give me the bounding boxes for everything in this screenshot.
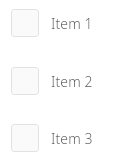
- button[interactable]: Toggle Item 2: [11, 67, 39, 95]
- staticText: Item 3: [51, 129, 93, 148]
- button[interactable]: Toggle Item 1: [11, 9, 39, 37]
- button[interactable]: Toggle Item 3: [0, 124, 126, 152]
- button[interactable]: Toggle Item 3: [11, 124, 39, 152]
- staticText: Item 1: [51, 14, 93, 33]
- staticText: Item 2: [51, 72, 93, 91]
- button[interactable]: Toggle Item 1: [0, 9, 126, 37]
- button[interactable]: Toggle Item 2: [0, 67, 126, 95]
